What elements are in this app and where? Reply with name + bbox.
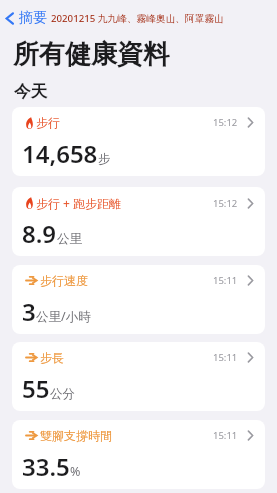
button[interactable]: 步行速度 (12, 265, 265, 334)
staticText: 步行 (36, 115, 60, 130)
staticText: 公分 (50, 386, 75, 402)
staticText: 15:11 (213, 274, 238, 287)
button[interactable]: 步行 + 跑步距離 (12, 187, 265, 256)
staticText: 步 (98, 151, 111, 167)
staticText: 15:11 (213, 429, 238, 442)
staticText: 今天 (14, 81, 47, 102)
staticText: 15:11 (213, 351, 238, 364)
staticText: 15:12 (213, 197, 238, 210)
staticText: 雙腳支撐時間 (40, 428, 112, 443)
staticText: 所有健康資料 (13, 38, 169, 71)
staticText: 55 (22, 372, 50, 405)
staticText: 14,658 (22, 137, 98, 170)
staticText: 20201215 九九峰、霧峰奧山、阿罩霧山 (51, 12, 224, 25)
button[interactable]: 摘要 (0, 9, 49, 31)
staticText: 15:12 (213, 116, 238, 129)
staticText: 公里 (57, 231, 82, 247)
staticText: % (70, 463, 81, 480)
staticText: 摘要 (19, 9, 47, 27)
staticText: 33.5 (22, 450, 70, 483)
staticText: 3 (22, 295, 36, 328)
staticText: 步行 + 跑步距離 (36, 195, 122, 211)
staticText: 8.9 (22, 217, 57, 250)
button[interactable]: 雙腳支撐時間 (12, 420, 265, 489)
button[interactable]: 步長 (12, 342, 265, 411)
staticText: 公里/小時 (36, 308, 91, 325)
staticText: 步行速度 (40, 273, 88, 288)
staticText: 步長 (40, 350, 64, 365)
button[interactable]: 步行 (12, 107, 265, 176)
